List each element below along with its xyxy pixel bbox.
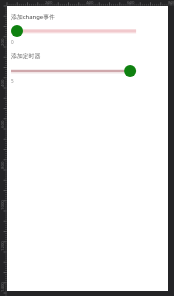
button[interactable]: Slider 添加定时器 [5, 63, 142, 79]
staticText: 添加定时器 [11, 52, 41, 59]
staticText: 0 [11, 39, 14, 45]
staticText: 5 [11, 78, 14, 84]
staticText: 添加change事件 [11, 13, 55, 21]
button[interactable]: Slider 添加change事件 [5, 23, 142, 39]
